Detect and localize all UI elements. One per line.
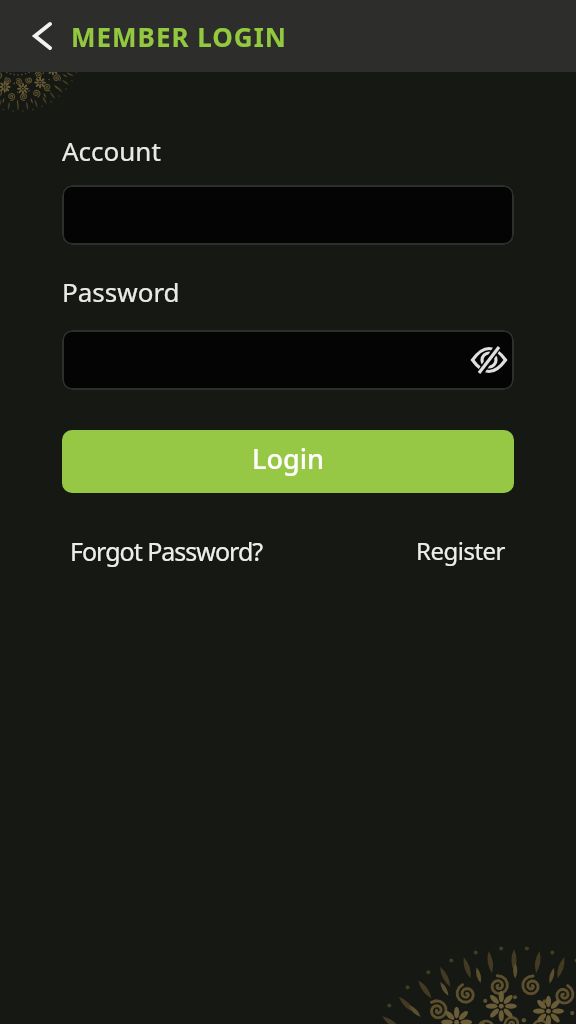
- staticText: Forgot Password?: [70, 534, 263, 568]
- staticText: Account: [62, 133, 161, 168]
- staticText: Register: [416, 534, 506, 567]
- staticText: MEMBER LOGIN: [71, 19, 287, 54]
- staticText: Login: [252, 440, 324, 477]
- staticText: Password: [62, 274, 180, 309]
